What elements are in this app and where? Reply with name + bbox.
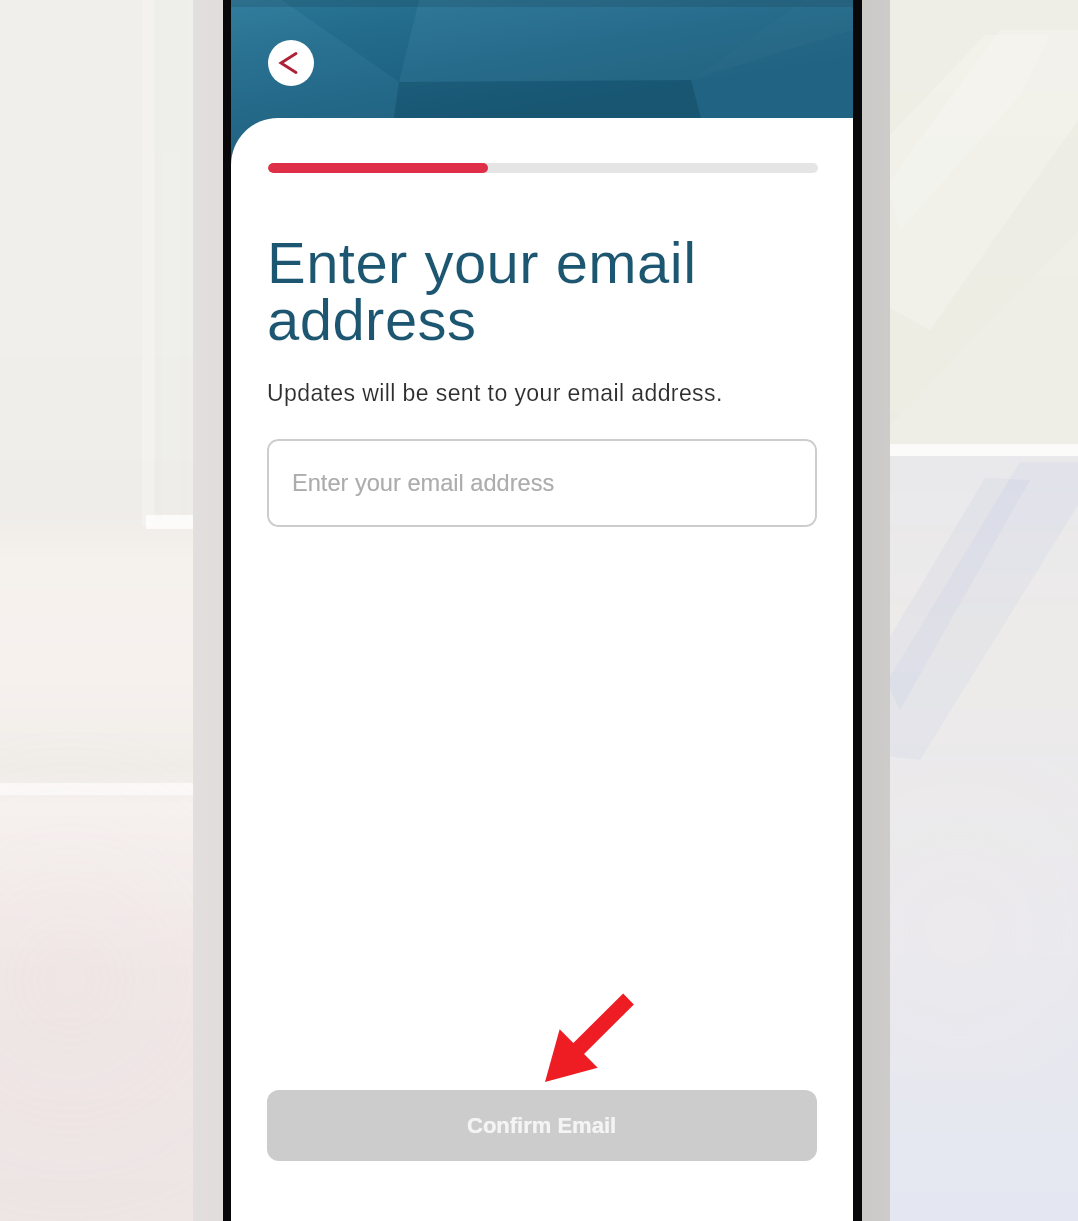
staticText: Enter your email address [292, 470, 555, 496]
button[interactable]: Enter your email address [267, 439, 817, 527]
staticText: Confirm Email [467, 1113, 617, 1138]
button[interactable]: Back [268, 40, 314, 86]
staticText: Enter your email address [267, 230, 837, 352]
button[interactable]: Confirm Email [267, 1090, 817, 1161]
staticText: Updates will be sent to your email addre… [267, 380, 837, 406]
